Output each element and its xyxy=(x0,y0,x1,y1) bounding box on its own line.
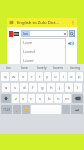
staticText: ?123 xyxy=(3,107,11,112)
button[interactable]: d xyxy=(20,83,28,92)
button[interactable]: Backspace xyxy=(72,94,83,103)
staticText: h xyxy=(50,85,53,91)
button[interactable]: Loving xyxy=(20,65,66,74)
button[interactable]: Lover xyxy=(20,56,66,65)
staticText: . xyxy=(65,107,67,113)
button[interactable]: w xyxy=(10,72,18,81)
button[interactable]: More options xyxy=(71,19,75,26)
button[interactable]: y xyxy=(44,72,51,81)
staticText: v xyxy=(39,96,42,102)
staticText: lov xyxy=(6,65,11,70)
staticText: o xyxy=(70,74,73,80)
button[interactable]: o xyxy=(68,72,75,81)
button[interactable]: m xyxy=(63,94,71,103)
staticText: x xyxy=(22,96,25,102)
button[interactable]: Menu xyxy=(9,20,14,25)
button[interactable]: lovers xyxy=(50,64,67,71)
button[interactable]: Love xyxy=(20,38,66,47)
button[interactable]: f xyxy=(29,83,37,92)
staticText: loving xyxy=(70,65,81,70)
button[interactable]: lov xyxy=(21,30,68,37)
button[interactable]: b xyxy=(45,94,53,103)
button[interactable]: lov xyxy=(0,64,16,71)
button[interactable]: l xyxy=(74,83,82,92)
staticText: r xyxy=(31,74,33,80)
staticText: z xyxy=(15,96,17,102)
button[interactable]: c xyxy=(28,94,35,103)
button[interactable]: r xyxy=(28,72,35,81)
staticText: y xyxy=(46,74,49,80)
button[interactable]: Menu xyxy=(7,18,77,27)
button[interactable]: e xyxy=(19,72,27,81)
button[interactable]: j xyxy=(56,83,64,92)
staticText: Love xyxy=(23,40,33,46)
staticText: a xyxy=(5,85,8,91)
staticText: t xyxy=(39,74,41,80)
button[interactable]: Enter xyxy=(71,105,83,114)
staticText: lov xyxy=(23,31,29,36)
button[interactable]: n xyxy=(54,94,62,103)
button[interactable]: v xyxy=(36,94,44,103)
button[interactable]: lovely xyxy=(33,64,50,71)
staticText: e xyxy=(22,74,25,80)
staticText: , xyxy=(16,107,18,113)
button[interactable]: q xyxy=(1,72,9,81)
staticText: b xyxy=(48,96,51,102)
button[interactable]: Loved xyxy=(20,47,66,56)
staticText: 🙂 xyxy=(24,108,29,112)
staticText: lovers xyxy=(53,65,64,70)
staticText: j xyxy=(59,85,61,91)
button[interactable]: u xyxy=(52,72,59,81)
button[interactable]: Shift xyxy=(1,94,11,103)
staticText: q xyxy=(4,74,7,80)
staticText: n xyxy=(57,96,60,102)
staticText: g xyxy=(41,85,44,91)
button[interactable]: Search xyxy=(69,30,75,37)
staticText: l xyxy=(77,85,79,91)
button[interactable]: h xyxy=(47,83,55,92)
staticText: u xyxy=(54,74,57,80)
staticText: s xyxy=(14,85,17,91)
button[interactable]: 🙂 xyxy=(22,105,30,114)
button[interactable]: Source language xyxy=(9,31,19,37)
button[interactable]: z xyxy=(12,94,19,103)
button[interactable]: p xyxy=(76,72,83,81)
button[interactable]: ?123 xyxy=(1,105,12,114)
button[interactable]: s xyxy=(11,83,19,92)
button[interactable]: t xyxy=(36,72,43,81)
staticText: Loved xyxy=(23,49,35,55)
button[interactable]: Speak xyxy=(68,41,73,46)
staticText: English to Zulu Dict... xyxy=(17,20,71,26)
staticText: w xyxy=(12,74,16,80)
staticText: c xyxy=(30,96,33,102)
button[interactable]: , xyxy=(13,105,21,114)
staticText: Lover xyxy=(23,58,34,64)
button[interactable]: i xyxy=(60,72,67,81)
staticText: Loving xyxy=(23,67,37,73)
button[interactable]: k xyxy=(65,83,73,92)
staticText: lovely xyxy=(37,65,47,70)
staticText: love xyxy=(21,65,28,70)
button[interactable]: loving xyxy=(67,64,84,71)
staticText: d xyxy=(23,85,26,91)
button[interactable]: love xyxy=(16,64,33,71)
staticText: i xyxy=(63,74,65,80)
staticText: k xyxy=(68,85,71,91)
button[interactable]: a xyxy=(2,83,10,92)
button[interactable]: g xyxy=(38,83,46,92)
staticText: p xyxy=(78,74,81,80)
button[interactable]: x xyxy=(20,94,27,103)
button[interactable]: Clear xyxy=(63,32,67,36)
staticText: f xyxy=(32,85,34,91)
staticText: m xyxy=(65,96,69,102)
